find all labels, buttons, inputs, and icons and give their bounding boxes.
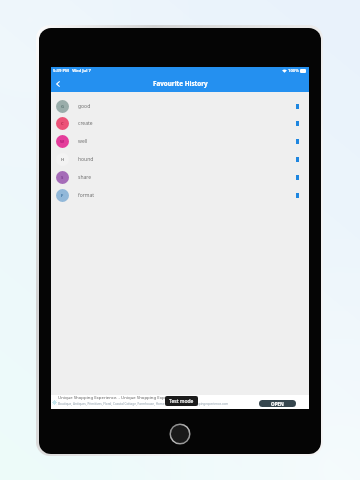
other: Home [169,423,191,445]
staticText: C [61,121,64,127]
button[interactable]: OPEN [259,400,296,407]
button[interactable]: G [51,97,309,115]
staticText: G [61,104,65,110]
staticText: Boutique, Antiques, Primitives, Floral, … [58,402,308,406]
staticText: share [78,174,92,181]
button[interactable]: H [51,150,309,168]
staticText: 100% [288,68,299,74]
button[interactable]: Bookmark [291,188,303,202]
staticText: Favourite History [153,79,208,88]
staticText: format [78,192,95,199]
staticText: create [78,120,93,127]
button[interactable]: Bookmark [291,99,303,113]
staticText: S [61,175,64,181]
staticText: good [78,103,91,110]
button[interactable]: Bookmark [291,134,303,148]
button[interactable]: W [51,132,309,150]
staticText: H [61,157,65,163]
button[interactable]: Back [51,75,65,92]
staticText: Test mode [169,398,194,405]
staticText: F [61,193,64,199]
button[interactable]: C [51,114,309,132]
button[interactable]: F [51,186,309,204]
staticText: W [60,139,65,145]
staticText: hound [78,156,94,163]
staticText: 5:39 PM Wed Jul 7 [53,68,91,74]
button[interactable]: Bookmark [291,116,303,130]
button[interactable]: Bookmark [291,170,303,184]
staticText: Unique Shopping Experience. - Unique Sho… [58,394,308,400]
button[interactable]: Bookmark [291,152,303,166]
staticText: OPEN [271,401,284,407]
button[interactable]: S [51,168,309,186]
staticText: well [78,138,88,145]
